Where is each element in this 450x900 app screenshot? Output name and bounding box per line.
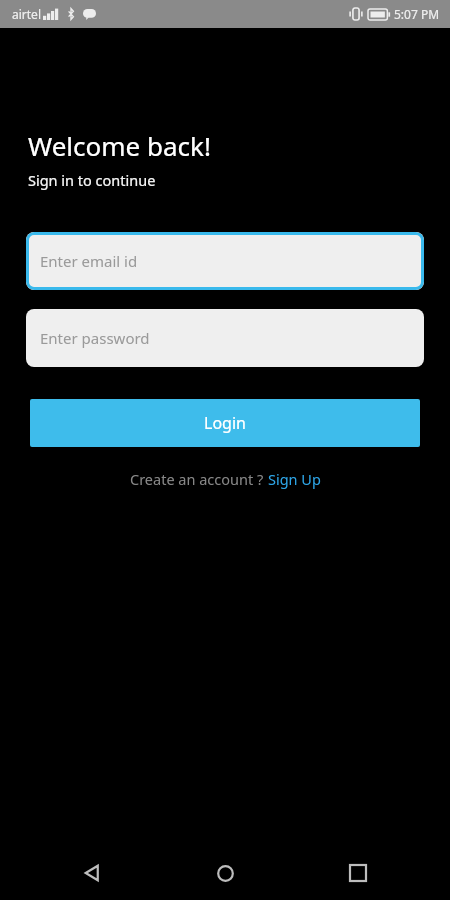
button[interactable]: Home <box>203 851 247 895</box>
button[interactable]: Enter password <box>26 309 424 367</box>
staticText: Enter password <box>40 328 150 348</box>
staticText: Sign in to continue <box>28 170 156 190</box>
staticText: Login <box>204 412 246 434</box>
staticText: Enter email id <box>40 251 138 271</box>
staticText: Sign Up <box>268 469 321 489</box>
button[interactable]: Back <box>70 851 114 895</box>
button[interactable]: Recent apps <box>336 851 380 895</box>
staticText: airtel <box>12 6 41 22</box>
staticText: Create an account ? <box>130 469 268 489</box>
staticText: 5:07 PM <box>394 6 440 22</box>
staticText: Welcome back! <box>28 128 211 163</box>
button[interactable]: Enter email id <box>26 232 424 290</box>
button[interactable]: Sign Up <box>268 469 321 489</box>
button[interactable]: Login <box>30 399 420 447</box>
